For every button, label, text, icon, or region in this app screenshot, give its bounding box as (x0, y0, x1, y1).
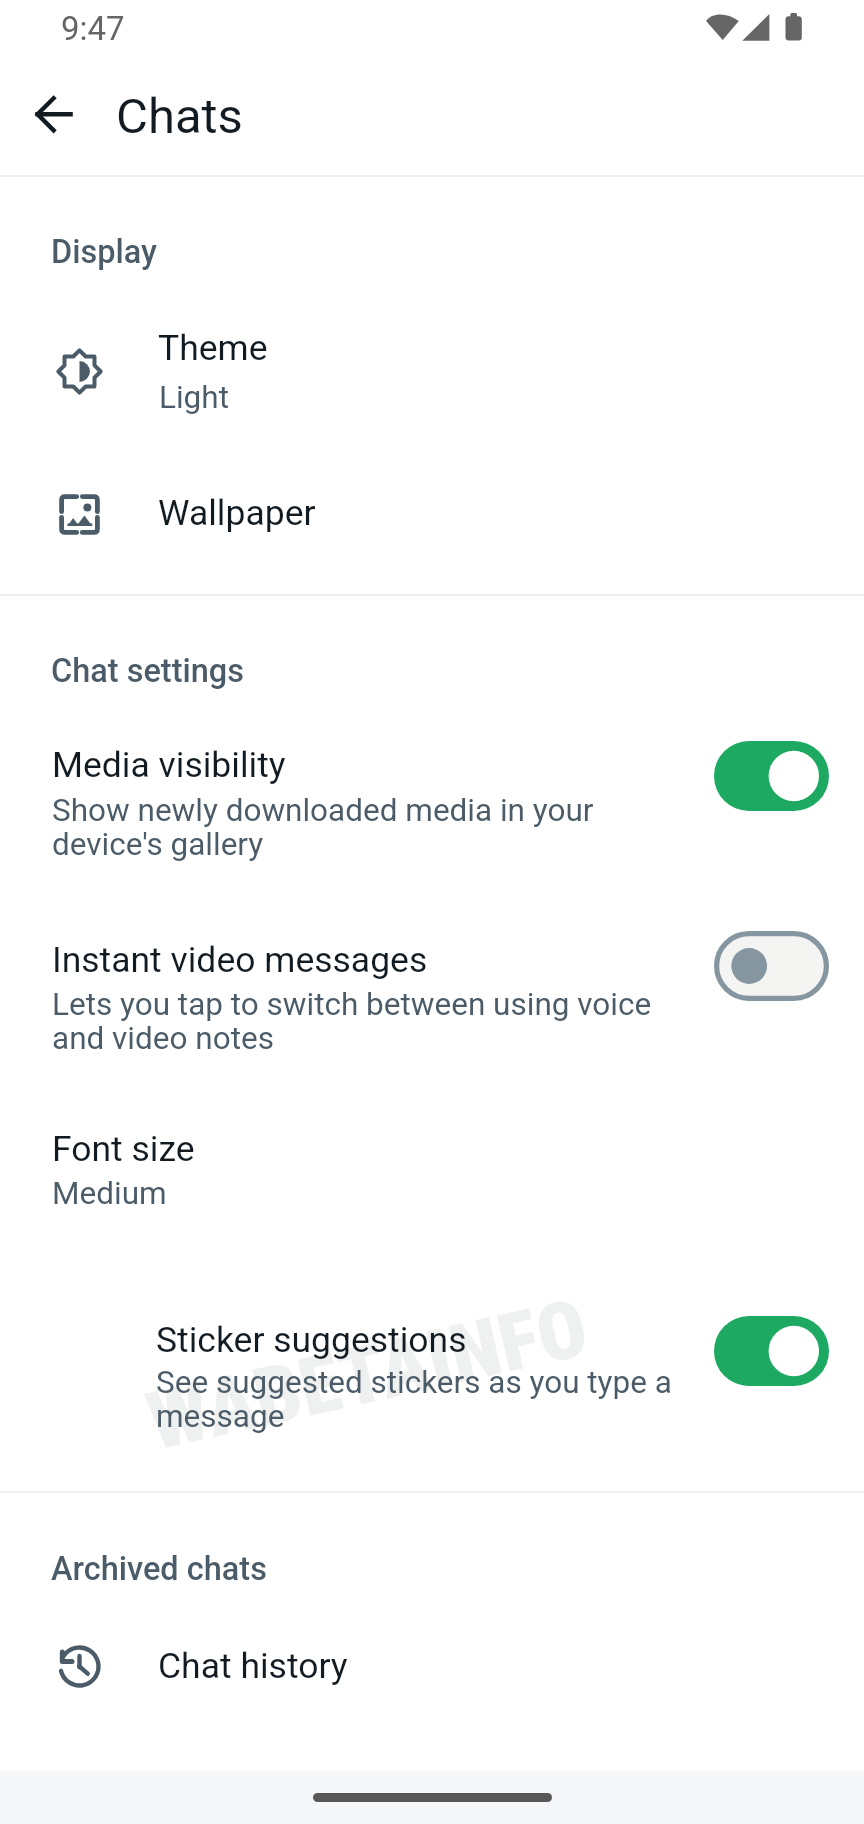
staticText: Archived chats (51, 1550, 267, 1588)
staticText: See suggested stickers as you type a mes… (156, 1364, 681, 1435)
staticText: Chats (116, 88, 243, 145)
button[interactable]: WABETAINFO (0, 1290, 864, 1480)
staticText: Lets you tap to switch between using voi… (52, 986, 664, 1057)
button[interactable]: Sticker suggestions (714, 1316, 829, 1386)
staticText: Sticker suggestions (156, 1319, 467, 1361)
button[interactable]: Back (20, 66, 116, 162)
staticText: Theme (158, 327, 268, 369)
staticText: 9:47 (61, 9, 125, 48)
staticText: WABETAINFO (59, 1263, 677, 1487)
button[interactable]: Theme (0, 320, 864, 424)
button[interactable]: Font size (0, 1100, 864, 1230)
staticText: Chat settings (51, 652, 245, 690)
button[interactable]: Media visibility (0, 700, 864, 890)
staticText: Light (159, 379, 229, 416)
staticText: Font size (52, 1128, 195, 1170)
staticText: Display (51, 233, 157, 271)
staticText: Media visibility (52, 744, 286, 786)
button[interactable]: Chat history (0, 1630, 864, 1706)
staticText: Wallpaper (158, 492, 316, 534)
button[interactable]: Instant video messages (714, 931, 829, 1001)
button[interactable]: Media visibility (714, 741, 829, 811)
staticText: Show newly downloaded media in your devi… (52, 792, 658, 863)
staticText: Instant video messages (52, 939, 428, 981)
button[interactable]: Instant video messages (0, 900, 864, 1080)
staticText: Chat history (158, 1645, 348, 1687)
staticText: Medium (52, 1175, 167, 1212)
button[interactable]: Wallpaper (0, 478, 864, 550)
